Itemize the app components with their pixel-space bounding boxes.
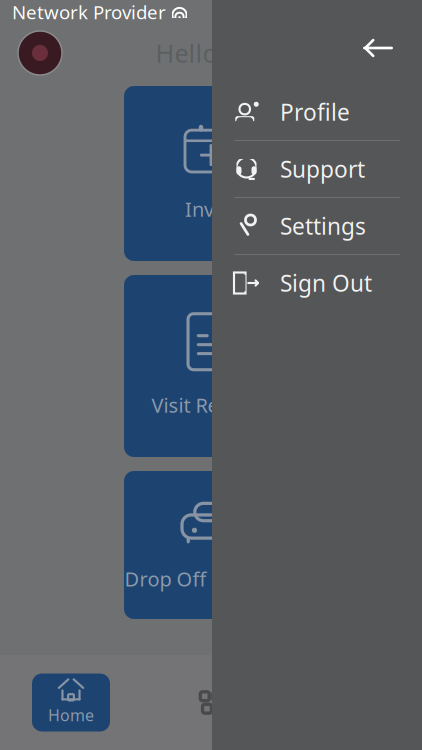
button[interactable]: Profile [212,84,422,140]
staticText: Support [280,154,365,184]
staticText: Settings [280,211,366,241]
button[interactable]: Back [356,26,400,70]
staticText: Visit Request [151,392,270,418]
button[interactable]: Visit Request [124,275,298,457]
staticText: Profile [280,97,350,127]
button[interactable]: Drop Off | Pick Up [124,471,298,619]
button[interactable]: Profile photo [18,31,62,75]
staticText: Home [48,704,94,726]
button[interactable]: Invite [124,86,298,261]
button[interactable]: Home [32,673,110,731]
staticText: Network Provider [12,0,166,24]
button[interactable]: Scan QR code [172,673,250,731]
staticText: Sign Out [280,268,372,298]
staticText: Invite [185,196,237,222]
button[interactable]: Support [212,141,422,197]
button[interactable]: Sign Out [212,255,422,311]
staticText: Drop Off | Pick Up [124,565,297,592]
button[interactable]: Settings [212,198,422,254]
staticText: Hello, Nu [155,36,266,70]
